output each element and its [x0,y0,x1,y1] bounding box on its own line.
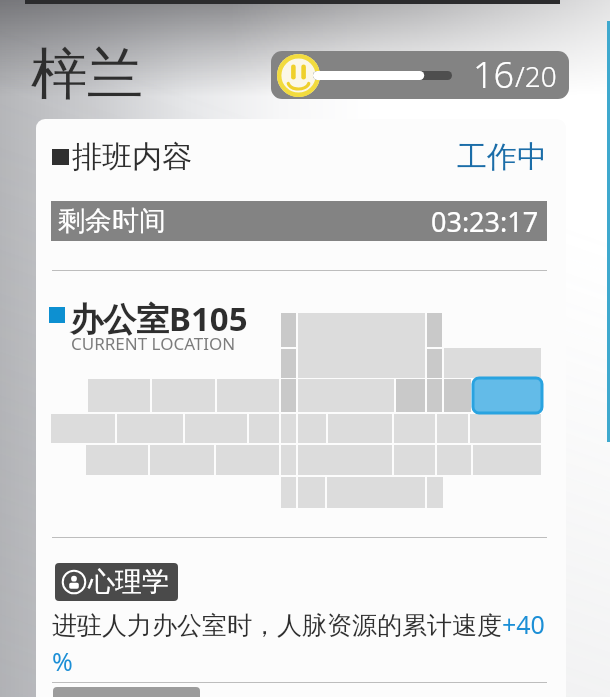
button[interactable]: 心理学 [55,563,178,601]
staticText: 办公室B105 [70,296,248,341]
staticText: 03:23:17 [431,203,539,240]
button[interactable]: 排班内容 [36,119,566,195]
button[interactable]: 16 [271,51,569,99]
staticText: 16 [473,51,515,98]
staticText: 工作中 [457,138,547,176]
button[interactable] [53,687,200,697]
staticText: 剩余时间 [58,204,166,238]
staticText: 梓兰 [31,39,143,110]
staticText: 心理学 [88,565,169,599]
staticText: /20 [515,57,557,95]
staticText: 排班内容 [72,138,192,176]
staticText: 进驻人力办公室时，人脉资源的累计速度+40​% [52,607,548,679]
staticText: CURRENT LOCATION [71,332,236,355]
